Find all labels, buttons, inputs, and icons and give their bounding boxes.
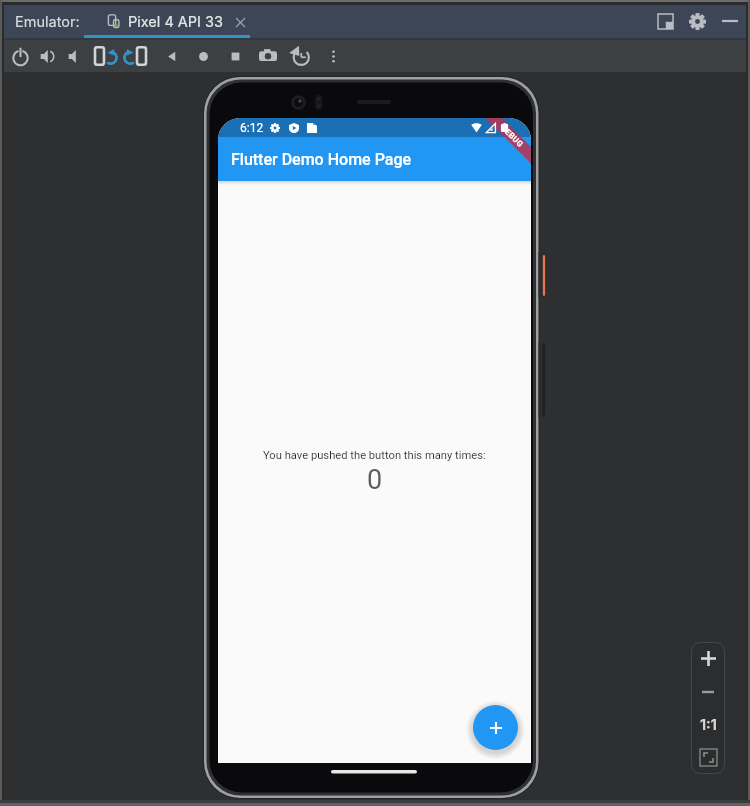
button[interactable]: Back (157, 40, 185, 72)
button[interactable]: Pixel 4 API 33 (106, 5, 248, 38)
button[interactable]: Settings (683, 7, 711, 35)
button[interactable]: Minimize (716, 7, 744, 35)
staticText: 6:12 (240, 121, 264, 135)
button[interactable]: Screenshot (254, 40, 282, 72)
staticText: You have pushed the button this many tim… (263, 449, 486, 462)
button[interactable]: Split window (651, 7, 679, 35)
button[interactable]: More (319, 40, 347, 72)
button[interactable]: Rotate left (91, 40, 119, 72)
button[interactable]: Power (6, 40, 34, 72)
staticText: Flutter Demo Home Page (231, 150, 412, 169)
staticText: 1:1 (700, 716, 717, 733)
staticText: Pixel 4 API 33 (128, 13, 224, 31)
button[interactable]: Close tab (232, 14, 248, 30)
button[interactable]: History (286, 40, 314, 72)
staticText: Emulator: (15, 13, 80, 31)
button[interactable]: Overview (221, 40, 249, 72)
button[interactable]: 1:1 (691, 708, 725, 741)
button[interactable]: Volume up (34, 40, 62, 72)
button[interactable]: Zoom out (691, 675, 725, 708)
button[interactable]: Rotate right (122, 40, 150, 72)
button[interactable]: Fit to screen (691, 741, 725, 774)
button[interactable]: Increment (473, 705, 518, 750)
button[interactable]: Volume down (62, 40, 90, 72)
button[interactable]: Home (189, 40, 217, 72)
staticText: 0 (367, 464, 383, 496)
button[interactable]: Zoom in (691, 642, 725, 675)
